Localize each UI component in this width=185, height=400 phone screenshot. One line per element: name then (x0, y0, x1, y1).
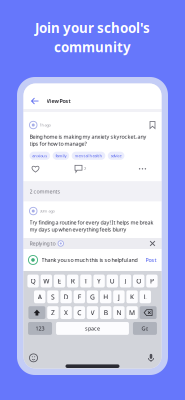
button[interactable]: Post (145, 256, 156, 263)
button[interactable]: L (140, 290, 151, 303)
staticText: Z (51, 308, 55, 317)
staticText: D (64, 292, 69, 301)
staticText: J (118, 292, 120, 301)
staticText: 2 (84, 166, 86, 171)
button[interactable]: S (47, 290, 59, 303)
button[interactable]: Delete (140, 306, 157, 319)
staticText: U (110, 277, 115, 285)
button[interactable]: Go (133, 322, 157, 335)
button[interactable]: 123 (28, 322, 52, 335)
button[interactable]: Back (28, 95, 41, 107)
staticText: Post (145, 256, 156, 263)
staticText: L (144, 292, 147, 301)
staticText: Replying to (29, 240, 55, 247)
staticText: anxious (32, 153, 47, 158)
staticText: O (136, 277, 141, 285)
button[interactable]: U (107, 275, 118, 287)
button[interactable]: Q (27, 275, 39, 287)
button[interactable]: advice (108, 152, 124, 160)
staticText: community (54, 38, 131, 56)
button[interactable]: V (87, 306, 98, 319)
staticText: Go (141, 325, 148, 332)
staticText: Q (31, 277, 36, 285)
button[interactable]: Cancel reply (149, 240, 155, 246)
button[interactable]: family (53, 152, 69, 160)
button[interactable]: A (34, 290, 45, 303)
staticText: Being home is making my anxiety skyrocke… (29, 133, 146, 147)
button[interactable]: I (120, 275, 131, 287)
button[interactable]: More (136, 164, 148, 173)
staticText: family (55, 153, 66, 158)
button[interactable]: Like (29, 164, 41, 173)
button[interactable]: Emoji (29, 353, 38, 362)
staticText: G (90, 292, 95, 301)
staticText: T (84, 277, 88, 285)
staticText: C (77, 308, 81, 317)
staticText: 1h ago (39, 122, 50, 128)
button[interactable]: Z (47, 306, 59, 319)
staticText: R (71, 277, 75, 285)
staticText: N (116, 308, 121, 317)
button[interactable]: W (41, 275, 52, 287)
staticText: Try finding a routine for every day! It … (29, 219, 153, 233)
staticText: advice (111, 153, 122, 158)
button[interactable]: F (74, 290, 85, 303)
staticText: space (85, 325, 100, 332)
staticText: Thank you so much this is so helpful and (41, 256, 137, 263)
staticText: K (130, 292, 134, 301)
staticText: H (103, 292, 108, 301)
button[interactable]: T (80, 275, 92, 287)
button[interactable]: K (126, 290, 138, 303)
button[interactable]: H (100, 290, 111, 303)
staticText: S (51, 292, 55, 301)
staticText: B (104, 308, 108, 317)
button[interactable]: space (56, 322, 129, 335)
staticText: X (64, 308, 68, 317)
button[interactable]: J (113, 290, 125, 303)
button[interactable]: Y (93, 275, 105, 287)
button[interactable]: R (67, 275, 78, 287)
button[interactable]: Dictate (146, 353, 155, 363)
staticText: Join your school's (35, 19, 150, 37)
staticText: A (38, 292, 42, 301)
staticText: mental health (74, 153, 102, 158)
button[interactable]: C (74, 306, 85, 319)
button[interactable]: O (133, 275, 144, 287)
staticText: P (150, 277, 154, 285)
staticText: View Post (46, 97, 70, 105)
button[interactable]: N (113, 306, 125, 319)
button[interactable]: B (100, 306, 111, 319)
staticText: M (129, 308, 135, 317)
button[interactable]: M (126, 306, 138, 319)
button[interactable]: 2 (74, 164, 86, 173)
staticText: 2 comments (29, 188, 60, 195)
staticText: I (124, 277, 126, 285)
button[interactable]: E (54, 275, 65, 287)
staticText: W (43, 277, 49, 285)
button[interactable]: P (146, 275, 158, 287)
button[interactable]: Shift (28, 306, 45, 319)
staticText: 30m ago (39, 208, 54, 214)
button[interactable]: G (87, 290, 98, 303)
staticText: 123 (35, 325, 44, 332)
staticText: F (78, 292, 81, 301)
button[interactable]: D (60, 290, 72, 303)
button[interactable]: Bookmark (149, 121, 155, 129)
staticText: V (90, 308, 94, 317)
staticText: E (57, 277, 61, 285)
button[interactable]: mental health (72, 152, 105, 160)
button[interactable]: anxious (29, 152, 50, 160)
staticText: Y (97, 277, 101, 285)
button[interactable]: X (60, 306, 72, 319)
